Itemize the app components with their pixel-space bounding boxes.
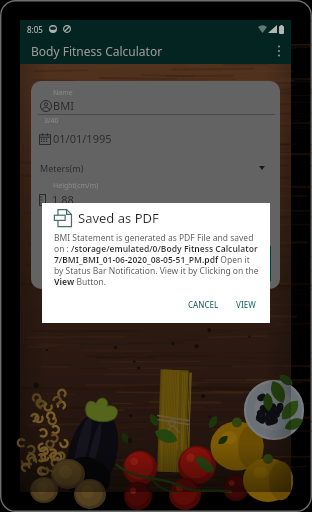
staticText: VIEW [236,299,256,310]
staticText: 01/01/1995 [53,131,112,146]
button[interactable]: More options [267,39,291,63]
staticText: Meters(m) [40,162,84,174]
staticText: 1.88 [52,192,74,207]
staticText: 8:05 [27,24,43,35]
button[interactable]: VIEW [230,295,262,314]
staticText: BMI [53,98,74,113]
staticText: Saved as PDF [78,209,159,227]
button[interactable]: CANCEL [182,295,225,314]
button[interactable]: 01/01/1995 [39,131,112,146]
staticText: Body Fitness Calculator [31,43,163,59]
staticText: BMI Statement is generated as PDF File a… [54,232,260,287]
button[interactable]: BMI [40,98,74,113]
staticText: CANCEL [188,299,219,310]
button[interactable]: Meters(m) [40,162,265,174]
staticText: 3/40 [44,116,59,126]
button[interactable]: Body Fitness Calculator [20,38,291,64]
staticText: Height(cm/m) [53,181,99,191]
button[interactable]: 1.88 [39,192,74,207]
staticText: Name [53,88,73,98]
